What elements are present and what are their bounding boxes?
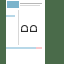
other: Item	[21, 25, 28, 32]
other: Item	[30, 25, 37, 32]
